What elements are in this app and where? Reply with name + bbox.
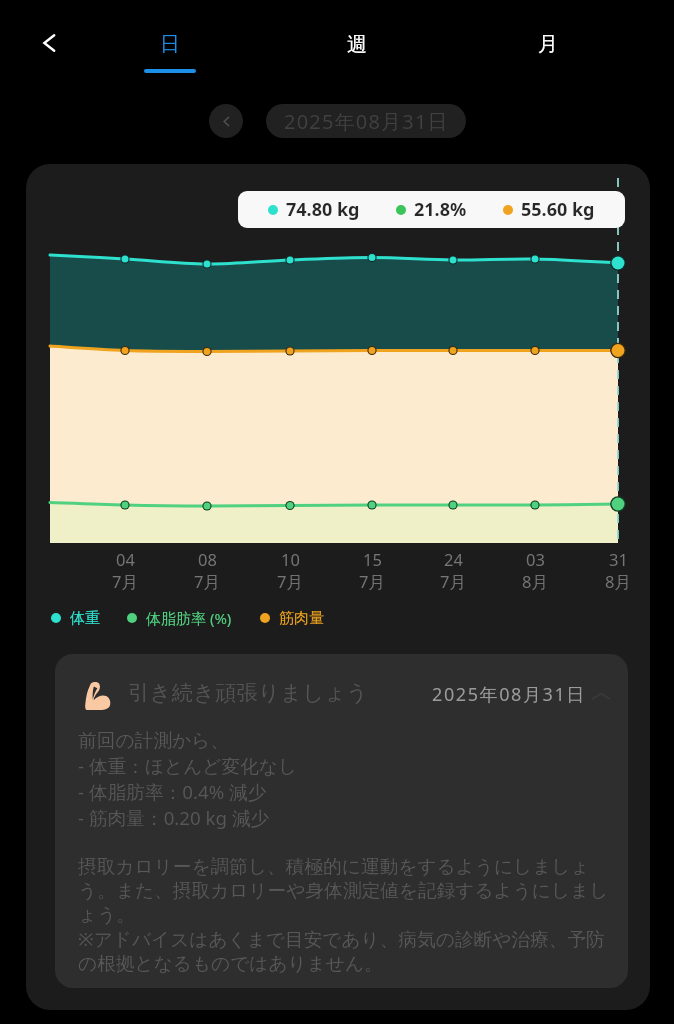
staticText: 体重: [70, 609, 100, 628]
staticText: 21.8%: [414, 197, 467, 222]
button[interactable]: 2025年08月31日: [266, 104, 466, 138]
staticText: 74.80 kg: [286, 197, 360, 222]
staticText: 7月: [440, 570, 466, 593]
button[interactable]: Back: [25, 19, 73, 67]
button[interactable]: Previous day: [209, 104, 243, 138]
staticText: ※アドバイスはあくまで目安であり、病気の診断や治療、予防の根拠となるものではあり…: [78, 926, 615, 975]
staticText: 体脂肪率 (%): [146, 608, 232, 628]
staticText: 8月: [522, 570, 548, 593]
staticText: 08: [198, 548, 217, 570]
staticText: 摂取カロリーを調節し、積極的に運動をするようにしましょう。また、摂取カロリーや身…: [78, 855, 615, 926]
staticText: 8月: [605, 570, 631, 593]
staticText: 2025年08月31日: [432, 682, 586, 707]
staticText: 週: [347, 32, 367, 57]
button[interactable]: 日: [110, 8, 230, 74]
staticText: - 筋肉量：0.20 kg 減少: [78, 805, 270, 831]
staticText: - 体重：ほとんど変化なし: [78, 753, 298, 779]
staticText: 31: [609, 548, 628, 570]
button[interactable]: 引き続き頑張りましょう: [55, 654, 628, 988]
staticText: 7月: [194, 570, 220, 593]
staticText: 10: [281, 548, 300, 570]
staticText: 前回の計測から、: [78, 729, 229, 753]
staticText: 55.60 kg: [521, 197, 595, 222]
staticText: 03: [526, 548, 545, 570]
staticText: 7月: [112, 570, 138, 593]
staticText: 2025年08月31日: [284, 108, 449, 135]
staticText: 日: [160, 32, 180, 57]
staticText: 04: [116, 548, 135, 570]
staticText: 7月: [359, 570, 385, 593]
staticText: 15: [363, 548, 382, 570]
staticText: 月: [538, 32, 558, 57]
button[interactable]: 月: [488, 8, 608, 74]
staticText: 24: [444, 548, 463, 570]
button[interactable]: 週: [297, 8, 417, 74]
staticText: 筋肉量: [279, 609, 324, 628]
staticText: 7月: [277, 570, 303, 593]
staticText: - 体脂肪率：0.4% 減少: [78, 779, 267, 805]
staticText: 引き続き頑張りましょう: [128, 679, 369, 706]
